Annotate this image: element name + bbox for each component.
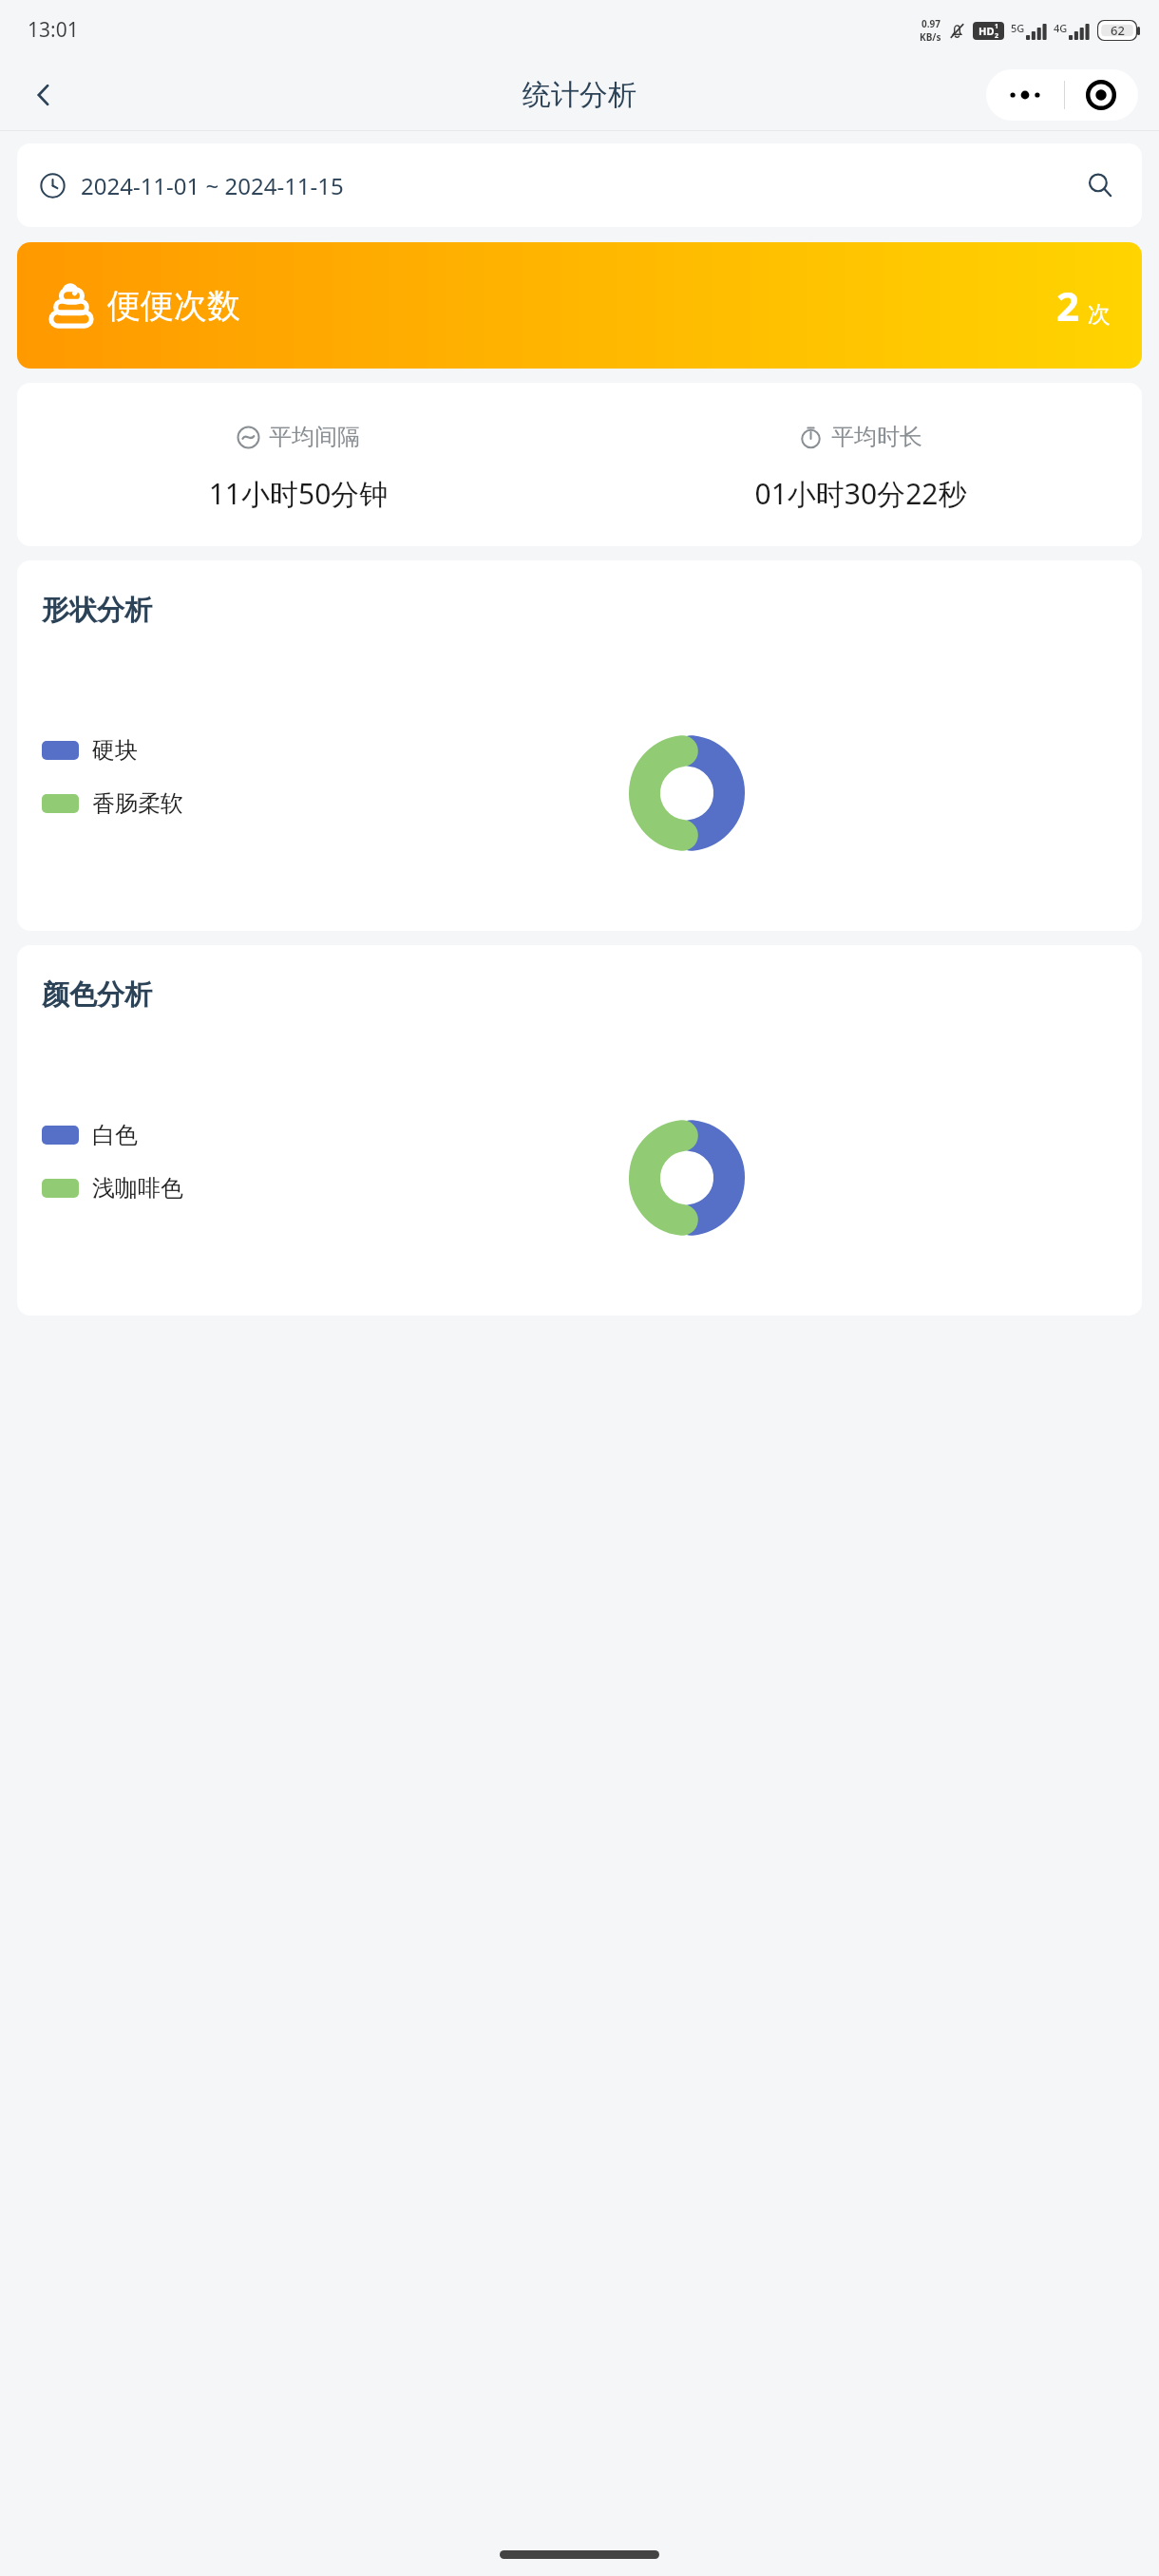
- staticText: 01小时30分22秒: [579, 474, 1142, 513]
- staticText: 1: [995, 22, 999, 31]
- button[interactable]: 颜色分析: [17, 945, 1142, 1316]
- staticText: 2024-11-01 ~ 2024-11-15: [81, 170, 344, 201]
- staticText: 62: [1111, 22, 1125, 39]
- staticText: 2: [995, 31, 999, 40]
- button[interactable]: 平均间隔: [17, 383, 1142, 546]
- staticText: 0.97: [921, 17, 940, 30]
- staticText: HD: [978, 24, 995, 38]
- staticText: 2: [1056, 278, 1080, 332]
- staticText: 13:01: [28, 16, 79, 44]
- staticText: KB/s: [920, 30, 941, 44]
- staticText: 平均时长: [831, 423, 922, 451]
- button[interactable]: Search: [1081, 166, 1119, 204]
- staticText: 11小时50分钟: [17, 474, 579, 513]
- staticText: 颜色分析: [42, 977, 152, 1013]
- staticText: 4G: [1054, 21, 1068, 35]
- staticText: 白色: [92, 1121, 138, 1149]
- staticText: 平均间隔: [269, 423, 360, 451]
- staticText: 浅咖啡色: [92, 1174, 183, 1203]
- staticText: 香肠柔软: [92, 789, 183, 818]
- button[interactable]: Back: [19, 70, 68, 120]
- staticText: 次: [1088, 300, 1111, 329]
- staticText: 5G: [1011, 21, 1025, 35]
- staticText: 统计分析: [522, 77, 636, 113]
- staticText: 形状分析: [42, 593, 152, 628]
- staticText: 硬块: [92, 736, 138, 765]
- staticText: 便便次数: [107, 285, 240, 327]
- button[interactable]: 2024-11-01 ~ 2024-11-15: [17, 143, 1142, 227]
- button[interactable]: 便便次数: [17, 242, 1142, 369]
- button[interactable]: Menu and close: [986, 69, 1138, 121]
- button[interactable]: 形状分析: [17, 560, 1142, 931]
